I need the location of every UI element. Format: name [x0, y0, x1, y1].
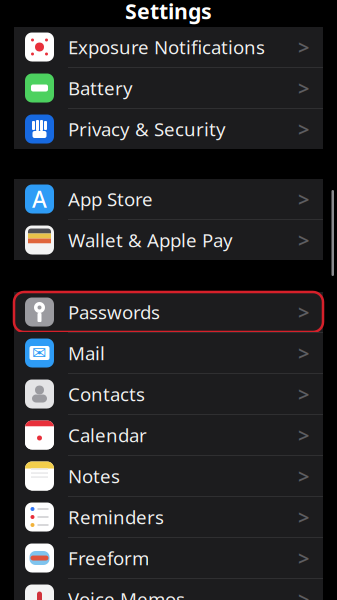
- staticText: >: [298, 34, 309, 60]
- button[interactable]: Wallet & Apple Pay: [14, 220, 323, 260]
- staticText: Mail: [68, 341, 105, 365]
- button[interactable]: ✉: [14, 333, 323, 373]
- staticText: >: [298, 586, 309, 600]
- staticText: Contacts: [68, 382, 145, 406]
- staticText: >: [298, 75, 309, 101]
- staticText: Reminders: [68, 505, 164, 529]
- staticText: >: [298, 116, 309, 142]
- button[interactable]: Contacts: [14, 374, 323, 414]
- staticText: >: [298, 340, 309, 366]
- staticText: Exposure Notifications: [68, 35, 265, 59]
- button[interactable]: A: [14, 179, 323, 219]
- button[interactable]: Battery: [14, 68, 323, 108]
- button[interactable]: Notes: [14, 456, 323, 496]
- staticText: Voice Memos: [68, 587, 185, 600]
- button[interactable]: Freeform: [14, 538, 323, 578]
- staticText: Freeform: [68, 546, 149, 570]
- button[interactable]: Calendar: [14, 415, 323, 455]
- staticText: Passwords: [68, 300, 160, 324]
- staticText: A: [32, 184, 47, 214]
- staticText: >: [298, 381, 309, 407]
- staticText: >: [298, 422, 309, 448]
- staticText: >: [298, 227, 309, 253]
- staticText: >: [298, 186, 309, 212]
- staticText: >: [298, 504, 309, 530]
- button[interactable]: Exposure Notifications: [14, 27, 323, 67]
- staticText: Battery: [68, 76, 133, 100]
- staticText: Wallet & Apple Pay: [68, 228, 233, 252]
- staticText: >: [298, 463, 309, 489]
- staticText: >: [298, 545, 309, 571]
- button[interactable]: Reminders: [14, 497, 323, 537]
- button[interactable]: Passwords: [14, 292, 323, 332]
- staticText: Notes: [68, 464, 120, 488]
- staticText: Settings: [125, 0, 212, 25]
- button[interactable]: Voice Memos: [14, 579, 323, 600]
- staticText: Calendar: [68, 423, 147, 447]
- staticText: App Store: [68, 187, 153, 211]
- staticText: Privacy & Security: [68, 117, 226, 141]
- staticText: ✉: [32, 343, 47, 363]
- staticText: >: [298, 299, 309, 325]
- button[interactable]: Privacy & Security: [14, 109, 323, 149]
